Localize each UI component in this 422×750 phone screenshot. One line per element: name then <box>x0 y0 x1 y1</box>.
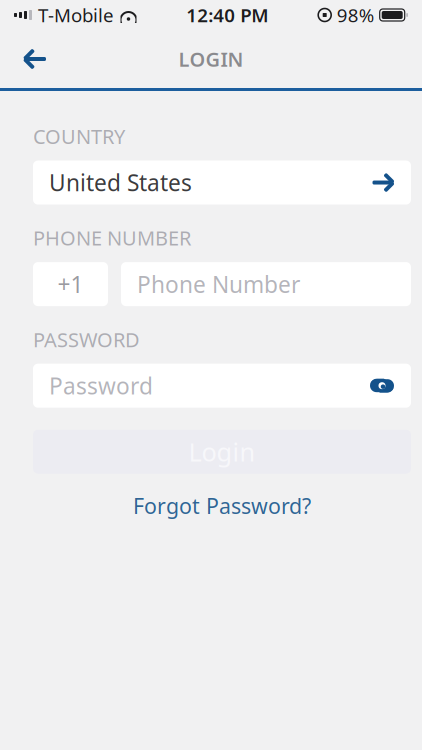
button[interactable]: United States <box>33 161 411 205</box>
staticText: LOGIN <box>178 46 243 72</box>
staticText: 98% <box>337 3 375 27</box>
staticText: COUNTRY <box>33 123 125 150</box>
staticText: United States <box>49 167 192 198</box>
button[interactable]: +1 <box>33 262 108 306</box>
button[interactable]: Phone Number <box>121 262 411 306</box>
staticText: PHONE NUMBER <box>33 225 191 251</box>
staticText: Password <box>49 371 153 401</box>
staticText: +1 <box>57 269 83 299</box>
staticText: Forgot Password? <box>133 492 311 520</box>
button[interactable]: Back <box>10 36 60 82</box>
button[interactable]: Forgot Password? <box>123 486 321 526</box>
staticText: Login <box>188 435 255 468</box>
staticText: 12:40 PM <box>186 3 268 27</box>
button[interactable]: Show password <box>369 378 395 394</box>
staticText: Phone Number <box>137 269 300 299</box>
staticText: T-Mobile <box>38 3 114 27</box>
staticText: PASSWORD <box>33 326 140 353</box>
